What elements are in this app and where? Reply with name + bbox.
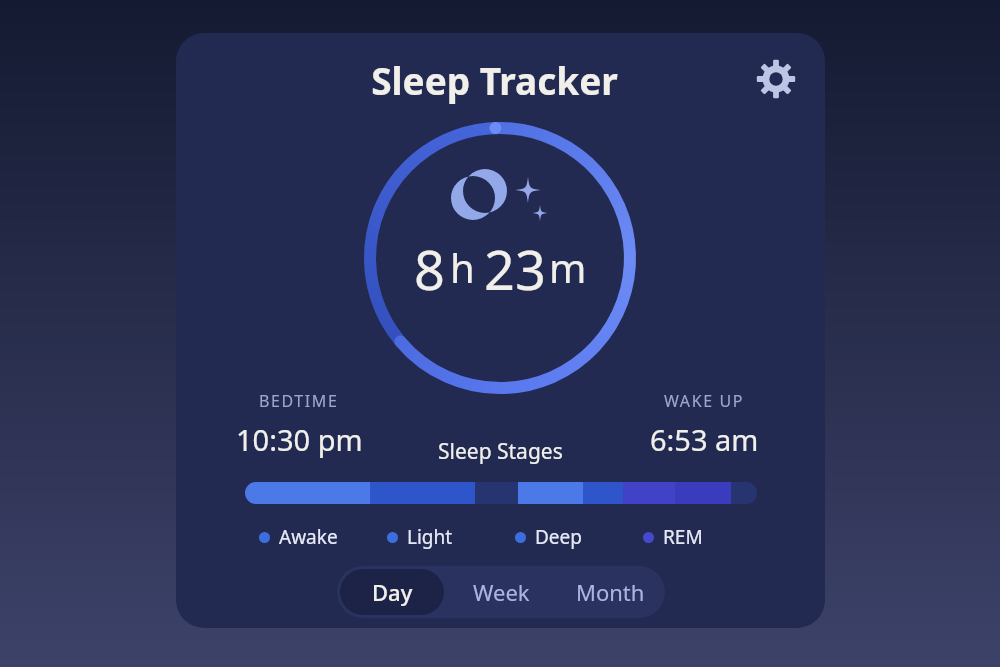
staticText: 10:30 pm (236, 420, 363, 459)
staticText: Awake (279, 524, 338, 550)
button[interactable]: Deep (501, 522, 629, 552)
staticText: REM (663, 524, 703, 550)
staticText: Day (372, 577, 413, 607)
button[interactable]: WAKE UP (618, 390, 790, 459)
button[interactable]: Light (373, 522, 501, 552)
button[interactable]: Day (340, 569, 444, 615)
staticText: Sleep Stages (438, 437, 563, 466)
button[interactable]: Week (450, 569, 553, 615)
staticText: Sleep Tracker (371, 55, 618, 105)
button[interactable]: REM (629, 522, 757, 552)
staticText: 23 (484, 232, 546, 296)
staticText: Week (473, 577, 530, 607)
staticText: Light (407, 524, 453, 550)
button[interactable] (245, 482, 757, 504)
staticText: Month (576, 577, 645, 607)
staticText: 6:53 am (650, 420, 759, 459)
staticText: WAKE UP (664, 390, 745, 412)
button[interactable]: Awake (245, 522, 373, 552)
staticText: h (450, 240, 475, 294)
button[interactable]: BEDTIME (213, 390, 385, 459)
staticText: Deep (535, 524, 582, 550)
staticText: m (549, 240, 587, 294)
staticText: 8 (414, 232, 445, 296)
staticText: BEDTIME (259, 390, 339, 412)
button[interactable]: Month (559, 569, 662, 615)
button[interactable]: Settings (750, 53, 802, 105)
